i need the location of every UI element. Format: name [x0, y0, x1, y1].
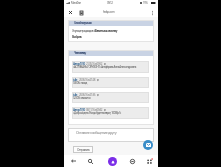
staticText: julie	[73, 78, 78, 82]
staticText: Услуги центра доходов:	[72, 29, 94, 33]
button[interactable]: Yandex home	[105, 155, 119, 167]
button[interactable]: julie	[72, 77, 149, 88]
button[interactable]: Search	[83, 155, 97, 167]
staticText: 09:12	[107, 1, 113, 5]
staticText: ▼	[97, 79, 99, 82]
button[interactable]: Close	[66, 8, 74, 17]
staticText: Автор1010	[73, 108, 85, 112]
staticText: fedsp.com	[103, 10, 115, 14]
staticText: МегаФон	[71, 1, 81, 5]
button[interactable]: Автор1010	[72, 61, 149, 73]
staticText: ▼	[97, 94, 99, 97]
staticText: 91%	[143, 1, 148, 5]
button[interactable]: Автор1010	[72, 107, 149, 119]
staticText: 20.06.16 в 21:36	[79, 93, 96, 97]
button[interactable]: New message	[143, 140, 153, 150]
staticText: ▼	[104, 63, 106, 66]
button[interactable]: Bookmark	[77, 8, 85, 17]
staticText: julie	[73, 93, 78, 97]
button[interactable]: More options	[148, 8, 156, 17]
staticText: «АСТРАХАНЬ-ГОРИЗОНТ» Алефёрова Анна Алек…	[73, 65, 137, 69]
staticText: Способ получения	[74, 21, 92, 25]
staticText: Выбрать	[72, 35, 82, 39]
button[interactable]: Back	[66, 155, 80, 167]
staticText: Чат по заказу	[74, 51, 86, 55]
staticText: 08.11.16 в 09:42	[86, 108, 103, 112]
staticText: «0006» назад	[73, 81, 87, 85]
button[interactable]: julie	[72, 92, 149, 103]
staticText: Отправить	[77, 148, 90, 152]
staticText: Оставьте сообщение другу	[76, 130, 117, 135]
button[interactable]: Отправить	[73, 146, 93, 153]
staticText: «2300» оказался	[73, 96, 91, 100]
button[interactable]: Tabs	[125, 155, 139, 167]
staticText: ▼	[104, 109, 106, 112]
button[interactable]: Apps	[142, 155, 156, 167]
button[interactable]: Оставьте сообщение другу	[68, 128, 154, 142]
staticText: 21.05.16 в 09:52	[86, 62, 103, 66]
staticText: 4G включены в оплату	[94, 29, 117, 33]
staticText: «Добрый день! Когда будет возврат, 10000…	[73, 111, 121, 115]
staticText: 20.06.16 в 21:28	[79, 78, 96, 82]
staticText: Автор1010	[73, 62, 85, 66]
